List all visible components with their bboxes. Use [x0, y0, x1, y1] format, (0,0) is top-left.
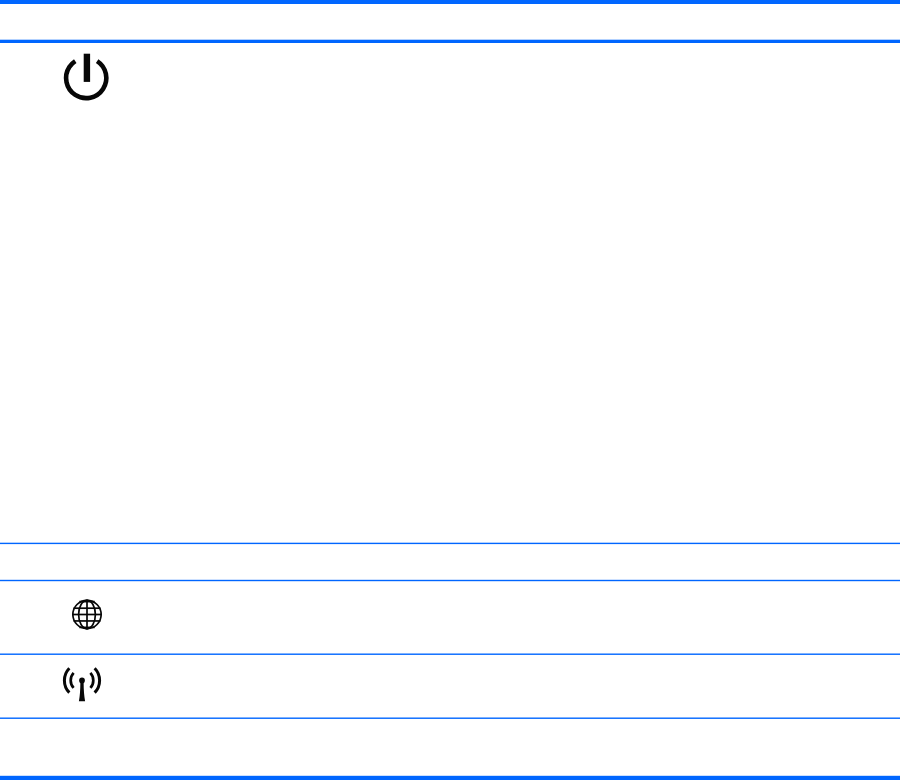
other: Internet	[69, 596, 105, 632]
button[interactable]: Wireless	[0, 655, 900, 718]
button[interactable]: Power button	[0, 43, 900, 543]
button[interactable]: Table section header	[0, 544, 900, 580]
other: Wireless	[62, 665, 104, 707]
button[interactable]: Table footer	[0, 719, 900, 776]
other: Power button	[60, 50, 115, 105]
button[interactable]: Internet	[0, 581, 900, 653]
